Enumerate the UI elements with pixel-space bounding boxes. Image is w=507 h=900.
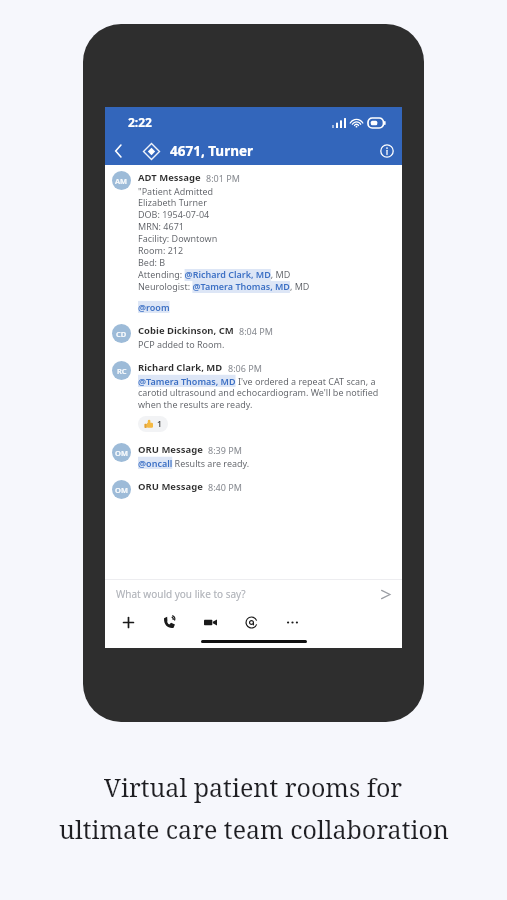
staticText: 8:04 PM — [239, 325, 273, 337]
button[interactable]: More — [281, 611, 303, 633]
staticText: Cobie Dickinson, CM — [138, 324, 234, 337]
staticText: ORU Message — [138, 443, 203, 456]
button[interactable]: OM — [105, 480, 402, 499]
button[interactable]: 1 — [138, 416, 168, 432]
staticText: AM — [115, 176, 128, 186]
button[interactable]: CD — [105, 324, 402, 350]
button[interactable]: AM — [105, 171, 402, 313]
staticText: CD — [116, 329, 127, 339]
staticText: OM — [115, 485, 128, 495]
staticText: ultimate care team collaboration — [59, 812, 449, 846]
button[interactable]: Room icon — [141, 141, 161, 161]
staticText: OM — [115, 448, 128, 458]
staticText: @Tamera Thomas, MD I've ordered a repeat… — [138, 375, 392, 411]
button[interactable]: Send — [372, 581, 398, 607]
staticText: What would you like to say? — [116, 587, 246, 601]
button[interactable]: RC — [105, 361, 402, 432]
staticText: PCP added to Room. — [138, 338, 225, 350]
button[interactable]: What would you like to say? — [105, 580, 402, 607]
staticText: ADT Message — [138, 171, 201, 184]
staticText: Virtual patient rooms for — [104, 770, 403, 804]
staticText: Richard Clark, MD — [138, 361, 223, 374]
button[interactable]: Add — [117, 611, 139, 633]
staticText: "Patient Admitted Elizabeth Turner DOB: … — [138, 185, 310, 293]
staticText: 4671, Turner — [170, 142, 254, 160]
staticText: 8:01 PM — [206, 172, 240, 184]
staticText: 2:22 — [128, 114, 152, 130]
staticText: 8:06 PM — [228, 362, 262, 374]
staticText: @room — [138, 301, 170, 313]
staticText: ORU Message — [138, 480, 203, 493]
button[interactable]: Back — [105, 137, 131, 165]
staticText: 1 — [157, 418, 162, 430]
button[interactable]: Call — [158, 611, 180, 633]
staticText: 8:39 PM — [208, 444, 242, 456]
staticText: RC — [117, 366, 127, 376]
staticText: 8:40 PM — [208, 481, 242, 493]
staticText: @oncall Results are ready. — [138, 457, 250, 469]
button[interactable]: Video call — [199, 611, 221, 633]
button[interactable]: Info — [372, 137, 402, 165]
button[interactable]: Mention — [240, 611, 262, 633]
button[interactable]: OM — [105, 443, 402, 469]
